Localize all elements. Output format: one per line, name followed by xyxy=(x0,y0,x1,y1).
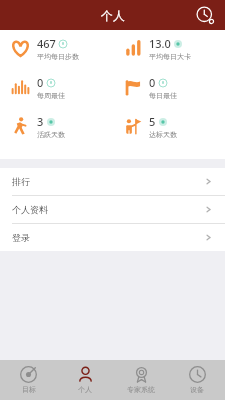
button[interactable]: 个人资料 xyxy=(0,196,225,223)
button[interactable]: 目标 xyxy=(0,360,57,400)
staticText: 3 xyxy=(37,114,44,129)
button[interactable]: 5 xyxy=(112,114,225,139)
button[interactable]: 3 xyxy=(0,114,112,139)
button[interactable]: 设备 xyxy=(169,360,225,400)
button[interactable]: 13.0 xyxy=(112,36,225,61)
button[interactable]: 登录 xyxy=(0,224,225,251)
staticText: 活跃天数 xyxy=(37,130,65,139)
button[interactable]: 排行 xyxy=(0,168,225,195)
button[interactable]: 467 xyxy=(0,36,112,61)
staticText: 每日最佳 xyxy=(149,91,177,100)
button[interactable]: 0 xyxy=(112,75,225,100)
staticText: 5 xyxy=(149,114,156,129)
staticText: 0 xyxy=(37,75,44,90)
staticText: 专家系统 xyxy=(127,385,155,394)
staticText: 个人 xyxy=(78,385,92,394)
staticText: 平均每日大卡 xyxy=(149,52,191,61)
staticText: 目标 xyxy=(22,385,36,394)
staticText: 467 xyxy=(37,36,56,51)
staticText: 达标天数 xyxy=(149,130,177,139)
staticText: 登录 xyxy=(12,232,30,243)
button[interactable]: 个人 xyxy=(57,360,113,400)
button[interactable]: Alarm settings xyxy=(194,4,216,26)
staticText: 0 xyxy=(149,75,156,90)
staticText: 排行 xyxy=(12,176,30,187)
staticText: 每周最佳 xyxy=(37,91,65,100)
staticText: 平均每日步数 xyxy=(37,52,79,61)
staticText: 设备 xyxy=(190,385,204,394)
button[interactable]: 专家系统 xyxy=(113,360,169,400)
staticText: 个人资料 xyxy=(12,204,48,215)
staticText: 13.0 xyxy=(149,36,171,51)
button[interactable]: 0 xyxy=(0,75,112,100)
staticText: 个人 xyxy=(101,8,125,23)
